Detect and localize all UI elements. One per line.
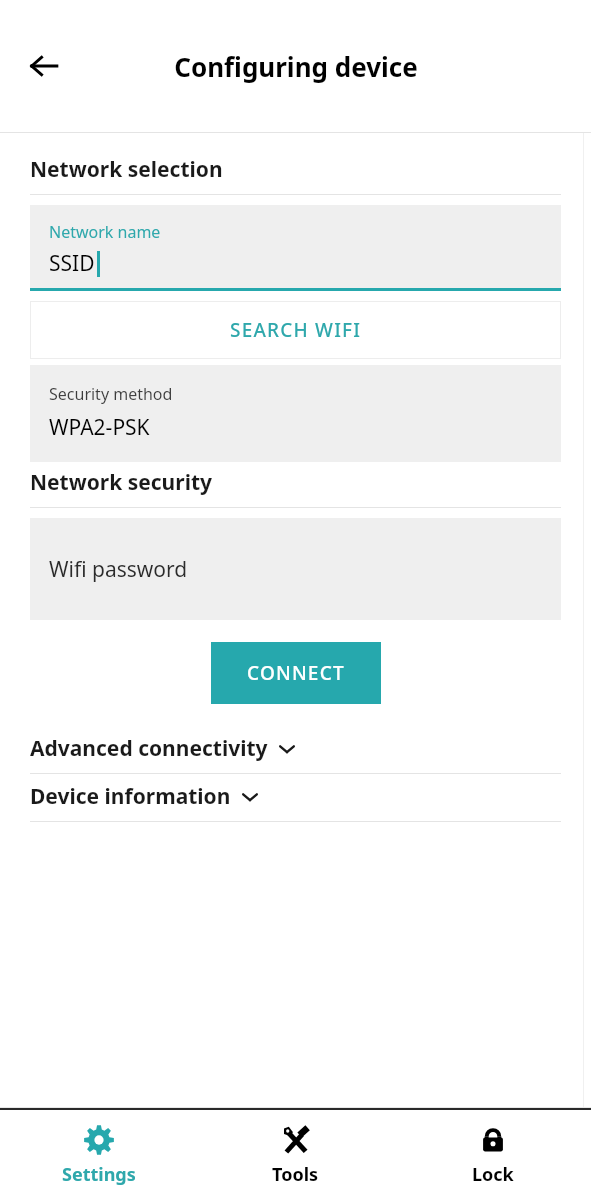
button[interactable]: Device information bbox=[0, 774, 591, 822]
staticText: Network name bbox=[49, 221, 161, 243]
staticText: Network security bbox=[30, 468, 213, 497]
staticText: Device information bbox=[30, 782, 231, 811]
button[interactable]: Wifi password bbox=[30, 518, 561, 620]
staticText: CONNECT bbox=[247, 660, 345, 686]
staticText: Security method bbox=[49, 383, 173, 405]
button[interactable]: Settings bbox=[0, 1110, 197, 1202]
staticText: Lock bbox=[472, 1162, 514, 1187]
button[interactable]: Network name bbox=[30, 205, 561, 291]
staticText: Settings bbox=[62, 1162, 136, 1187]
staticText: SEARCH WIFI bbox=[230, 317, 362, 343]
button[interactable]: Security method bbox=[30, 365, 561, 462]
button[interactable]: SEARCH WIFI bbox=[30, 301, 561, 359]
staticText: Advanced connectivity bbox=[30, 734, 268, 763]
staticText: WPA2-PSK bbox=[49, 413, 150, 442]
button[interactable]: Tools bbox=[197, 1110, 394, 1202]
button[interactable]: Back bbox=[16, 38, 72, 94]
button[interactable]: Lock bbox=[394, 1110, 591, 1202]
staticText: SSID bbox=[49, 249, 95, 278]
staticText: Network selection bbox=[30, 155, 223, 184]
staticText: Configuring device bbox=[174, 49, 418, 84]
button[interactable]: CONNECT bbox=[211, 642, 381, 704]
button[interactable]: Advanced connectivity bbox=[0, 726, 591, 774]
staticText: Wifi password bbox=[49, 555, 188, 584]
staticText: Tools bbox=[272, 1162, 319, 1187]
